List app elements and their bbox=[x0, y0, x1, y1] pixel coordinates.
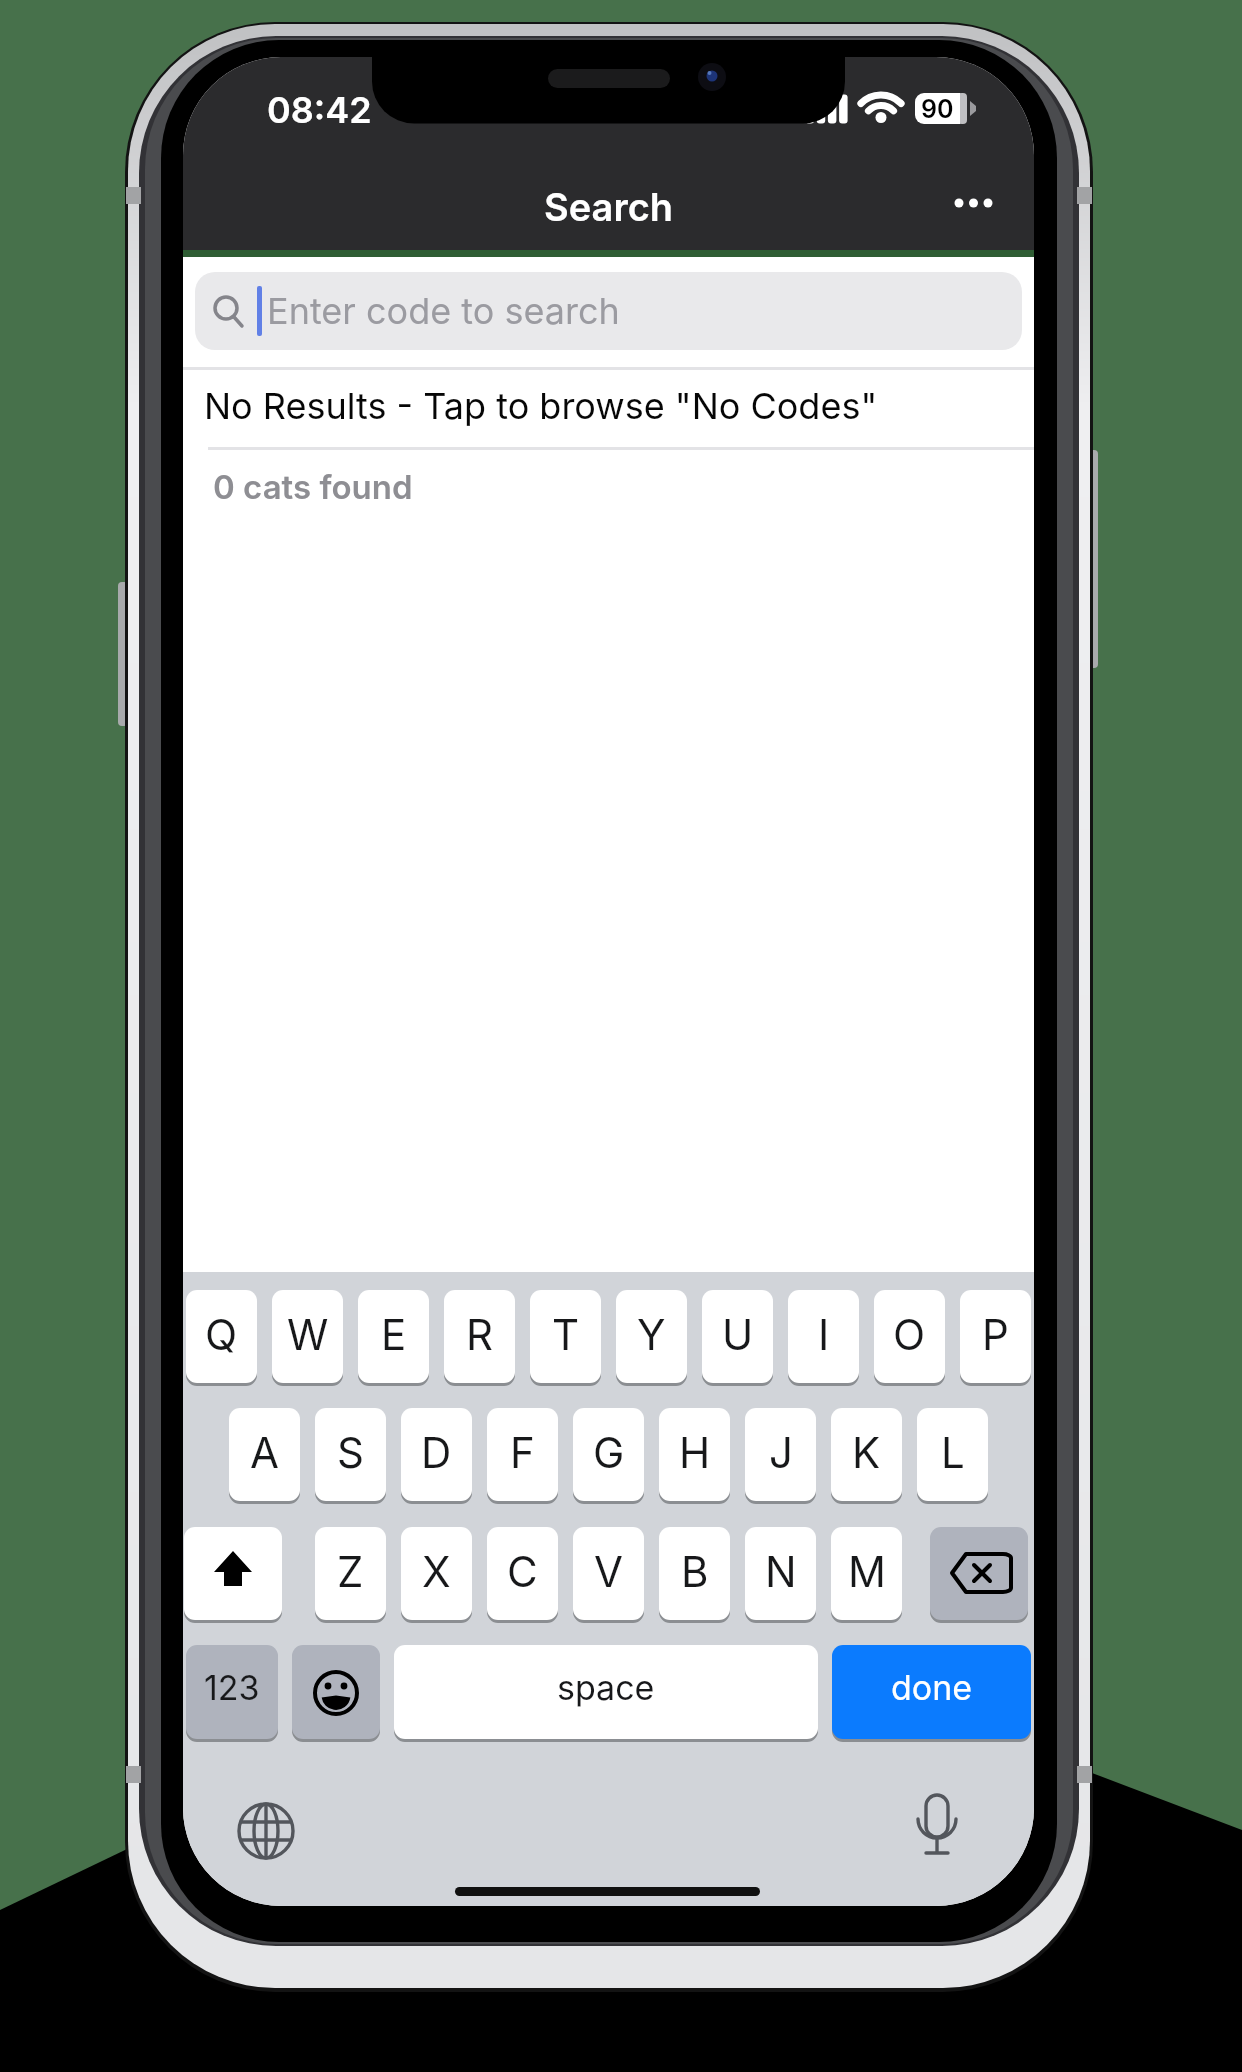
button[interactable]: W bbox=[272, 1290, 343, 1383]
staticText: U bbox=[722, 1309, 754, 1360]
button[interactable]: C bbox=[487, 1527, 558, 1620]
button[interactable]: H bbox=[659, 1408, 730, 1501]
button[interactable]: D bbox=[401, 1408, 472, 1501]
staticText: 0 cats found bbox=[213, 467, 413, 507]
button[interactable]: B bbox=[659, 1527, 730, 1620]
button[interactable]: done bbox=[832, 1645, 1031, 1739]
button[interactable]: G bbox=[573, 1408, 644, 1501]
staticText: J bbox=[769, 1427, 793, 1478]
button[interactable]: O bbox=[874, 1290, 945, 1383]
staticText: R bbox=[466, 1309, 494, 1360]
button[interactable]: M bbox=[831, 1527, 902, 1620]
button[interactable]: F bbox=[487, 1408, 558, 1501]
staticText: D bbox=[421, 1427, 452, 1478]
button[interactable]: A bbox=[229, 1408, 300, 1501]
staticText: Q bbox=[205, 1309, 238, 1360]
button[interactable]: V bbox=[573, 1527, 644, 1620]
button[interactable]: space bbox=[394, 1645, 818, 1739]
staticText: E bbox=[381, 1309, 407, 1360]
staticText: No Results - Tap to browse "No Codes" bbox=[204, 384, 878, 428]
button[interactable]: P bbox=[960, 1290, 1031, 1383]
staticText: K bbox=[852, 1427, 881, 1478]
staticText: W bbox=[287, 1309, 329, 1360]
button[interactable] bbox=[292, 1645, 380, 1739]
staticText: Z bbox=[337, 1546, 364, 1597]
staticText: Enter code to search bbox=[267, 289, 620, 333]
button[interactable]: R bbox=[444, 1290, 515, 1383]
staticText: G bbox=[593, 1427, 625, 1478]
staticText: done bbox=[891, 1667, 973, 1708]
button[interactable]: Y bbox=[616, 1290, 687, 1383]
button[interactable]: I bbox=[788, 1290, 859, 1383]
button[interactable]: X bbox=[401, 1527, 472, 1620]
button[interactable]: Enter code to search bbox=[195, 272, 1022, 350]
button[interactable] bbox=[900, 1788, 974, 1868]
staticText: I bbox=[818, 1309, 830, 1360]
button[interactable]: 123 bbox=[186, 1645, 278, 1739]
staticText: T bbox=[552, 1309, 580, 1360]
staticText: X bbox=[422, 1546, 451, 1597]
button[interactable] bbox=[230, 1795, 302, 1867]
staticText: S bbox=[337, 1427, 364, 1478]
staticText: M bbox=[848, 1546, 886, 1597]
button[interactable]: Z bbox=[315, 1527, 386, 1620]
button[interactable] bbox=[930, 1527, 1028, 1620]
button[interactable]: Q bbox=[186, 1290, 257, 1383]
staticText: Y bbox=[637, 1309, 666, 1360]
button[interactable]: S bbox=[315, 1408, 386, 1501]
button[interactable]: U bbox=[702, 1290, 773, 1383]
button[interactable]: No Results - Tap to browse "No Codes" bbox=[183, 367, 1034, 444]
button[interactable]: E bbox=[358, 1290, 429, 1383]
staticText: 90 bbox=[921, 94, 954, 124]
staticText: N bbox=[765, 1546, 797, 1597]
button[interactable]: K bbox=[831, 1408, 902, 1501]
staticText: H bbox=[679, 1427, 711, 1478]
staticText: 08:42 bbox=[267, 88, 372, 132]
staticText: 123 bbox=[204, 1667, 260, 1708]
staticText: L bbox=[941, 1427, 965, 1478]
staticText: F bbox=[510, 1427, 535, 1478]
button[interactable] bbox=[184, 1527, 282, 1620]
staticText: V bbox=[594, 1546, 623, 1597]
staticText: A bbox=[250, 1427, 279, 1478]
staticText: space bbox=[557, 1667, 655, 1708]
button[interactable]: L bbox=[917, 1408, 988, 1501]
button[interactable]: J bbox=[745, 1408, 816, 1501]
staticText: Search bbox=[544, 184, 674, 230]
button[interactable]: N bbox=[745, 1527, 816, 1620]
staticText: C bbox=[507, 1546, 538, 1597]
staticText: P bbox=[982, 1309, 1009, 1360]
staticText: B bbox=[681, 1546, 709, 1597]
button[interactable]: T bbox=[530, 1290, 601, 1383]
staticText: O bbox=[893, 1309, 926, 1360]
button[interactable] bbox=[940, 178, 1010, 228]
